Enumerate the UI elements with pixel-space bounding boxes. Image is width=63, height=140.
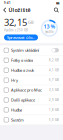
button[interactable]: Systém ukládání: [0, 45, 63, 55]
button[interactable]: Spravovat úložiště: [4, 34, 38, 40]
button[interactable]: Systém: [0, 115, 63, 125]
button[interactable]: Hudba: [0, 105, 63, 115]
button[interactable]: Hry: [0, 75, 63, 85]
staticText: 32,15: [4, 16, 27, 28]
staticText: 2,9 GB: [49, 98, 59, 102]
staticText: Hudba: [11, 107, 22, 113]
staticText: 13 %: [43, 23, 55, 30]
staticText: ▮▮▮: [56, 1, 59, 4]
button[interactable]: Hledat: [54, 6, 63, 14]
staticText: Úložiště: [8, 6, 30, 14]
staticText: 4,1 GB: [49, 68, 59, 72]
staticText: Systém ukládání: [11, 48, 39, 53]
button[interactable]: Úložiště: [0, 6, 33, 14]
staticText: Další aplikace: [11, 97, 35, 103]
staticText: 6,7 GB: [49, 78, 59, 82]
staticText: Fotky a videa: [11, 57, 33, 63]
button[interactable]: Fotky a videa: [0, 55, 63, 65]
button[interactable]: Další aplikace: [0, 95, 63, 105]
staticText: využito: [45, 30, 54, 33]
button[interactable]: Aplikace pro Mac: [0, 85, 63, 95]
button[interactable]: Hudba a zvuk: [0, 65, 63, 75]
staticText: Aplikace pro Mac: [11, 87, 42, 93]
staticText: Hudba a zvuk: [11, 67, 34, 73]
staticText: GB: [27, 19, 34, 25]
staticText: Spravovat úložiště: [7, 35, 35, 40]
staticText: Využito z 250 GB: [4, 28, 28, 32]
staticText: 3,5 GB: [49, 88, 59, 92]
staticText: Hry: [11, 77, 18, 83]
staticText: 9:41: [4, 1, 11, 5]
staticText: 5,0 GB: [49, 118, 59, 122]
staticText: Systém: [11, 117, 24, 122]
staticText: 8,2 GB: [49, 58, 59, 62]
staticText: 1,8 GB: [49, 108, 59, 112]
